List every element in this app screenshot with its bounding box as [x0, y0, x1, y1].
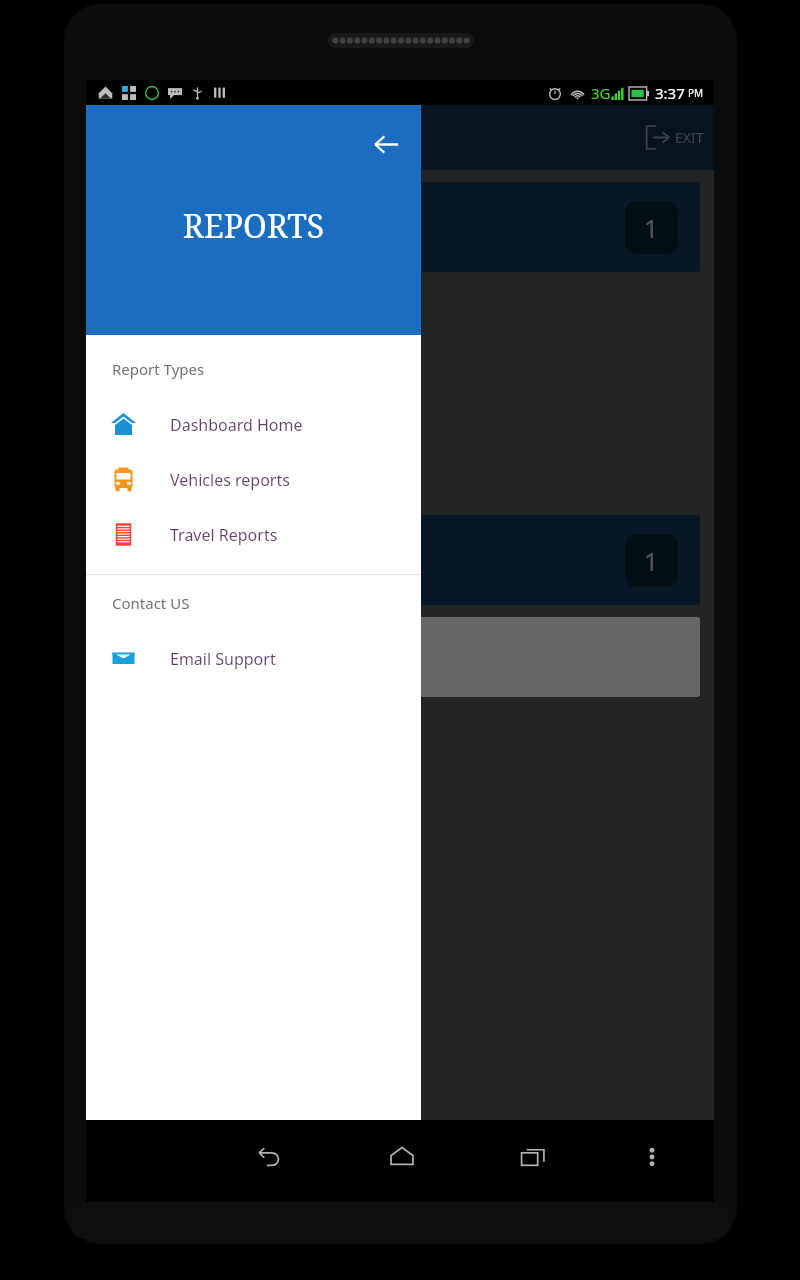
- staticText: Travel Reports: [170, 524, 278, 546]
- staticText: Email Support: [170, 648, 276, 670]
- button[interactable]: 1: [100, 515, 700, 605]
- button[interactable]: Recents: [510, 1134, 556, 1180]
- staticText: Vehicles reports: [170, 469, 290, 491]
- staticText: JANE DOE: [193, 644, 285, 670]
- staticText: PM: [688, 86, 704, 100]
- staticText: Dashboard Home: [170, 414, 303, 436]
- staticText: 1: [644, 544, 659, 578]
- staticText: 3:37: [655, 83, 685, 103]
- button[interactable]: Dashboard Home: [86, 397, 421, 452]
- staticText: REPORTS: [86, 204, 421, 248]
- button[interactable]: Home: [379, 1134, 425, 1180]
- staticText: 3G: [591, 83, 611, 103]
- button[interactable]: Back: [363, 121, 409, 167]
- staticText: Report Types: [112, 359, 205, 379]
- button[interactable]: Email Support: [86, 631, 421, 686]
- button[interactable]: More options: [629, 1134, 675, 1180]
- button[interactable]: Vehicles reports: [86, 452, 421, 507]
- staticText: EXIT: [675, 128, 704, 147]
- button[interactable]: J: [100, 617, 700, 697]
- staticText: 1: [644, 211, 659, 245]
- button[interactable]: 1: [100, 182, 700, 272]
- button[interactable]: EXIT: [644, 124, 704, 151]
- button[interactable]: Travel Reports: [86, 507, 421, 562]
- button[interactable]: Back: [246, 1134, 292, 1180]
- staticText: Contact US: [112, 593, 190, 613]
